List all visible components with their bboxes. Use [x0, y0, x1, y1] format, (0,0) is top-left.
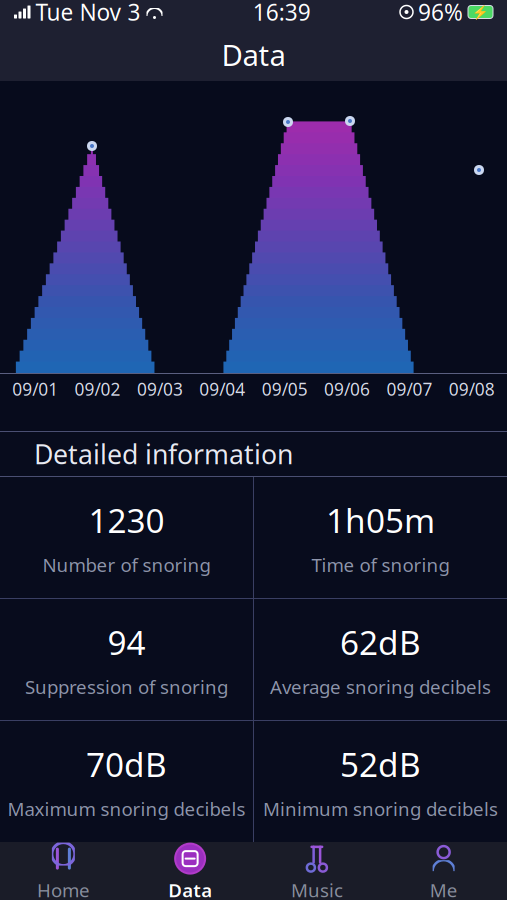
button[interactable]: 1230: [0, 477, 253, 598]
button[interactable]: Home: [0, 842, 127, 900]
staticText: 09/07: [386, 377, 432, 400]
staticText: Average snoring decibels: [270, 674, 491, 699]
button[interactable]: 94: [0, 599, 253, 720]
staticText: 94: [107, 620, 145, 664]
staticText: Time of snoring: [311, 552, 449, 577]
staticText: Me: [430, 878, 458, 900]
staticText: 09/05: [262, 377, 308, 400]
staticText: Suppression of snoring: [25, 674, 228, 699]
staticText: Tue Nov 3: [35, 0, 140, 27]
staticText: Minimum snoring decibels: [263, 796, 498, 821]
staticText: 62dB: [340, 620, 421, 664]
button[interactable]: Data: [127, 842, 254, 900]
staticText: Detailed information: [34, 436, 293, 472]
button[interactable]: Me: [380, 842, 507, 900]
button[interactable]: 62dB: [254, 599, 507, 720]
staticText: 96%: [418, 0, 463, 27]
staticText: 1h05m: [326, 498, 435, 542]
staticText: Number of snoring: [42, 552, 210, 577]
staticText: 1230: [88, 498, 164, 542]
staticText: 09/02: [75, 377, 121, 400]
staticText: Data: [221, 35, 285, 74]
staticText: Music: [291, 878, 343, 900]
staticText: 52dB: [340, 742, 421, 786]
button[interactable]: Music: [253, 842, 380, 900]
staticText: 09/04: [199, 377, 245, 400]
staticText: 09/01: [12, 377, 58, 400]
button[interactable]: 52dB: [254, 721, 507, 842]
staticText: Home: [37, 878, 90, 900]
staticText: 09/03: [137, 377, 183, 400]
staticText: 09/08: [449, 377, 495, 400]
button[interactable]: 1h05m: [254, 477, 507, 598]
button[interactable]: 70dB: [0, 721, 253, 842]
staticText: Data: [168, 878, 212, 900]
staticText: 70dB: [86, 742, 167, 786]
staticText: ⚡: [472, 4, 489, 20]
staticText: 16:39: [253, 0, 311, 27]
staticText: 09/06: [324, 377, 370, 400]
staticText: Maximum snoring decibels: [7, 796, 245, 821]
